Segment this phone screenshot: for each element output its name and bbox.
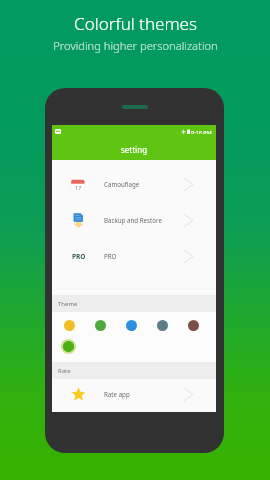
- button[interactable]: Theme colour: [126, 320, 137, 331]
- button[interactable]: PRO: [52, 238, 216, 274]
- button[interactable]: 17: [52, 166, 216, 202]
- staticText: PRO: [72, 252, 86, 261]
- button[interactable]: Theme colour: [95, 320, 106, 331]
- staticText: Camouflage: [104, 180, 140, 188]
- staticText: Colorful themes: [74, 12, 197, 35]
- button[interactable]: Backup and Restore: [52, 202, 216, 238]
- staticText: PRO: [104, 252, 117, 260]
- button[interactable]: Rate app: [52, 376, 216, 412]
- button[interactable]: Theme colour: [188, 320, 199, 331]
- button[interactable]: Theme colour: [64, 320, 75, 331]
- staticText: Rate: [58, 367, 71, 375]
- button[interactable]: Selected theme colour: [61, 339, 76, 354]
- staticText: 9:16 PM: [191, 129, 212, 134]
- button[interactable]: Theme colour: [157, 320, 168, 331]
- staticText: Rate app: [104, 390, 130, 398]
- staticText: Providing higher personalization: [53, 38, 218, 53]
- staticText: 17: [75, 184, 82, 192]
- staticText: setting: [121, 144, 148, 155]
- staticText: Backup and Restore: [104, 216, 162, 224]
- staticText: Theme: [58, 300, 78, 308]
